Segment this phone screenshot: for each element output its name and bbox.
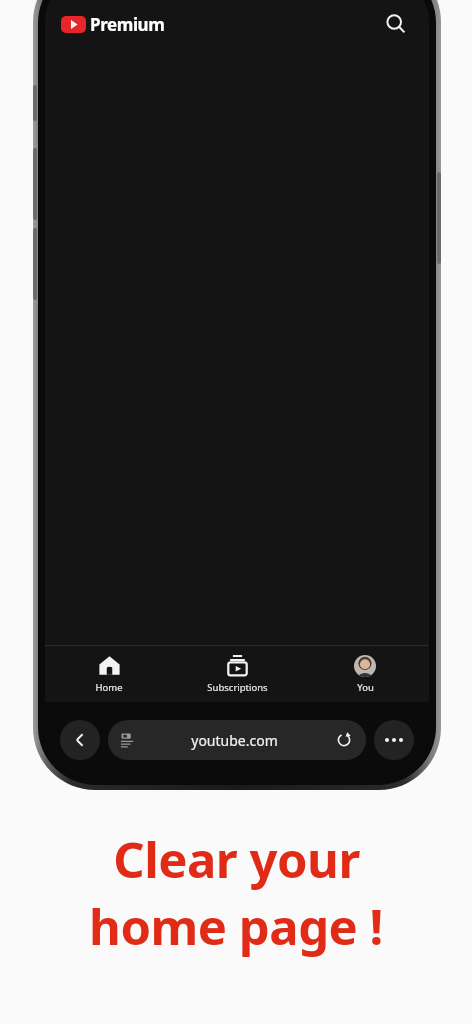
staticText: You <box>357 681 374 694</box>
button[interactable]: Back <box>60 720 100 760</box>
staticText: Premium <box>90 13 165 36</box>
button[interactable]: Search <box>377 5 415 43</box>
button[interactable]: Home <box>45 648 173 700</box>
staticText: Clear your <box>113 826 360 893</box>
button[interactable]: Subscriptions <box>173 648 301 700</box>
button[interactable]: More options <box>374 720 414 760</box>
staticText: youtube.com <box>135 731 334 750</box>
button[interactable]: youtube.com <box>108 720 366 760</box>
staticText: home page ! <box>89 893 383 960</box>
button[interactable]: You <box>301 649 429 700</box>
button[interactable]: Reload <box>334 730 354 750</box>
button[interactable]: Premium <box>57 9 169 40</box>
staticText: Subscriptions <box>207 681 268 694</box>
staticText: Home <box>95 681 123 694</box>
